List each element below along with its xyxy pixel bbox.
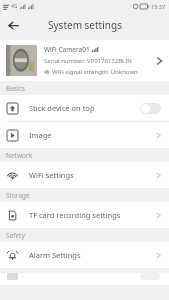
- staticText: WiFi Camera01: [44, 45, 90, 54]
- staticText: Stick device on top: [29, 103, 140, 113]
- staticText: 15:37: [151, 3, 166, 10]
- staticText: System settings: [48, 18, 122, 32]
- button[interactable]: Image: [0, 122, 169, 148]
- staticText: Network: [6, 151, 33, 160]
- staticText: Storage: [6, 191, 30, 200]
- staticText: WiFi signal strength: Unknown: [52, 68, 138, 76]
- button[interactable]: WiFi settings: [0, 162, 169, 188]
- button[interactable]: Stick device on top: [0, 95, 169, 121]
- button[interactable]: TF card recording settings: [0, 202, 169, 228]
- button[interactable]: Alarm Settings: [0, 242, 169, 268]
- button[interactable]: More settings: [0, 273, 169, 285]
- staticText: Alarm Settings: [29, 250, 156, 260]
- button[interactable]: WiFi Camera01: [0, 40, 169, 81]
- staticText: Basics: [6, 84, 25, 93]
- staticText: TF card recording settings: [29, 210, 156, 220]
- button[interactable]: Back: [4, 16, 22, 34]
- staticText: 4G: [11, 3, 18, 10]
- staticText: Image: [29, 130, 156, 140]
- staticText: WiFi settings: [29, 170, 156, 180]
- staticText: Serial number: VP0176132BLIN: [44, 57, 132, 65]
- staticText: Safety: [6, 231, 25, 240]
- button[interactable]: Stick device on top toggle: [140, 103, 161, 114]
